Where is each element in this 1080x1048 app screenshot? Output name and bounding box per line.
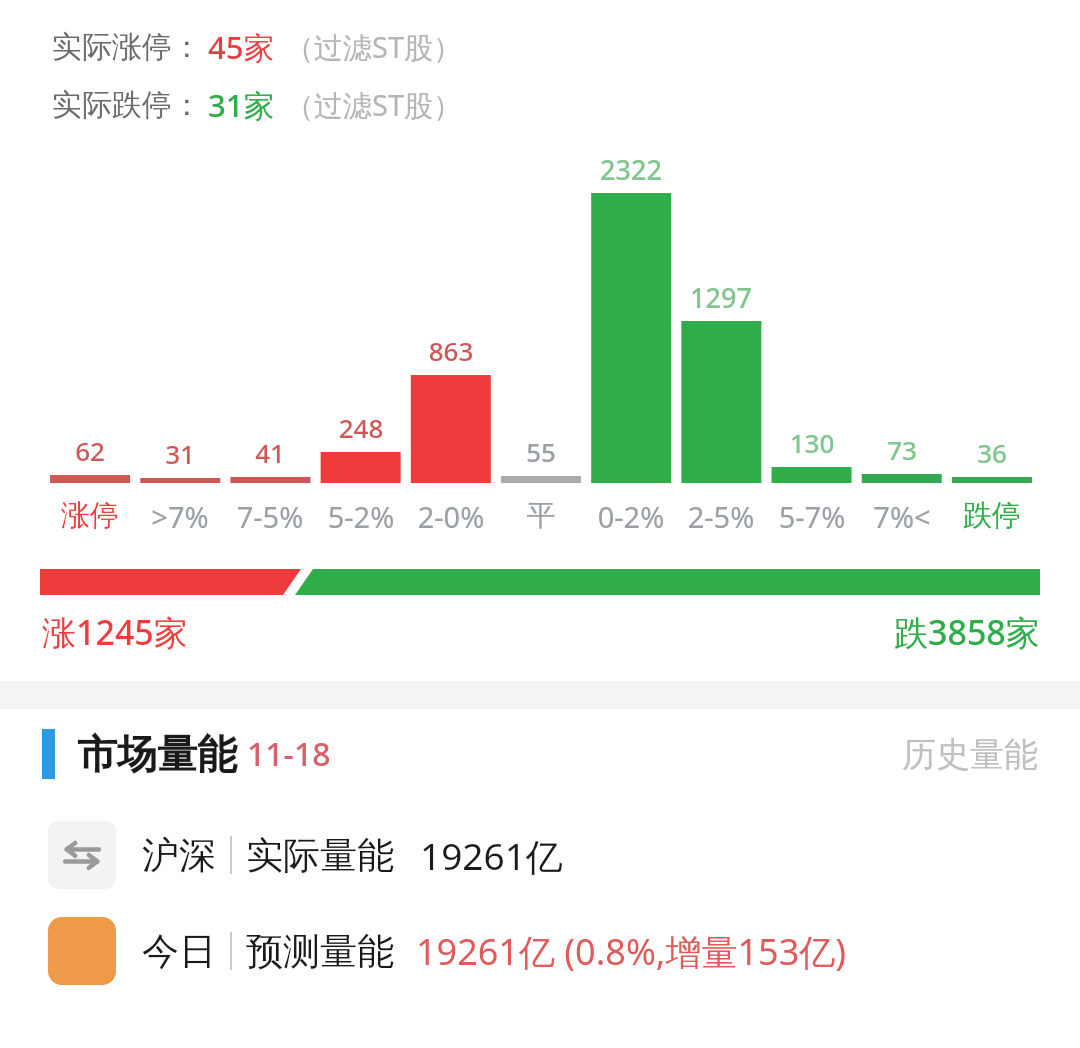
staticText: 130 — [757, 425, 867, 460]
staticText: 11-18 — [247, 732, 331, 776]
staticText: 19261亿 (0.8%,增量153亿) — [416, 927, 847, 976]
staticText: 1297 — [666, 279, 776, 316]
button[interactable]: 0-2% — [576, 497, 686, 536]
staticText: 31 — [125, 436, 235, 471]
button[interactable]: 2-5% — [666, 497, 776, 536]
button[interactable]: 5-2% — [306, 497, 416, 536]
staticText: 跌3858家 — [894, 609, 1040, 655]
staticText: 45家 — [208, 26, 275, 68]
staticText: >7% — [125, 497, 235, 536]
staticText: 实际跌停： — [52, 86, 202, 124]
button[interactable]: 5-7% — [757, 497, 867, 536]
staticText: （过滤ST股） — [285, 27, 463, 67]
button[interactable] — [0, 565, 1080, 599]
staticText: 41 — [215, 435, 325, 470]
staticText: 市场量能 — [77, 729, 237, 779]
staticText: 2322 — [576, 151, 686, 188]
staticText: 7-5% — [215, 497, 325, 536]
staticText: 2-0% — [396, 497, 506, 536]
staticText: 今日 — [142, 928, 216, 975]
staticText: （过滤ST股） — [285, 85, 463, 125]
staticText: 历史量能 — [902, 733, 1038, 776]
staticText: 2-5% — [666, 497, 776, 536]
staticText: 62 — [35, 433, 145, 468]
staticText: 实际量能 — [246, 832, 394, 879]
staticText: 863 — [396, 333, 506, 368]
staticText: 5-7% — [757, 497, 867, 536]
staticText: 5-2% — [306, 497, 416, 536]
button[interactable]: 平 — [486, 497, 596, 534]
staticText: 7%< — [847, 497, 957, 536]
button[interactable]: 跌停 — [937, 497, 1047, 534]
staticText: 跌停 — [937, 497, 1047, 534]
button[interactable]: 7-5% — [215, 497, 325, 536]
staticText: 平 — [486, 497, 596, 534]
staticText: 19261亿 — [420, 830, 563, 881]
staticText: 涨停 — [35, 497, 145, 534]
staticText: 73 — [847, 432, 957, 467]
button[interactable]: 今日预测量能 — [48, 917, 1060, 985]
button[interactable]: >7% — [125, 497, 235, 536]
staticText: 31家 — [208, 84, 275, 126]
button[interactable]: 7%< — [847, 497, 957, 536]
other: 沪深 exchange — [48, 821, 116, 889]
other: 今日预测量能 — [48, 917, 116, 985]
button[interactable]: 涨停 — [35, 497, 145, 534]
staticText: 36 — [937, 435, 1047, 470]
staticText: 248 — [306, 410, 416, 445]
staticText: 预测量能 — [246, 928, 394, 975]
staticText: 涨1245家 — [42, 609, 188, 655]
button[interactable]: 历史量能 — [902, 733, 1038, 776]
staticText: 沪深 — [142, 832, 216, 879]
staticText: 实际涨停： — [52, 28, 202, 66]
staticText: 0-2% — [576, 497, 686, 536]
staticText: 55 — [486, 434, 596, 469]
button[interactable]: 2-0% — [396, 497, 506, 536]
button[interactable]: 沪深 exchange — [48, 821, 1040, 889]
